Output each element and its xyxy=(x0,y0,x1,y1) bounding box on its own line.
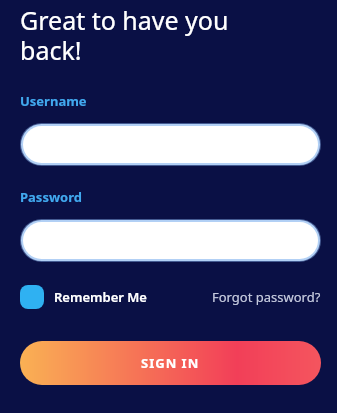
staticText: SIGN IN xyxy=(141,354,200,372)
button[interactable] xyxy=(23,222,318,259)
staticText: Password xyxy=(20,188,82,206)
button[interactable]: Forgot password? xyxy=(212,288,321,306)
button[interactable]: Remember Me xyxy=(20,285,147,309)
staticText: Remember Me xyxy=(54,288,147,306)
button[interactable]: SIGN IN xyxy=(20,341,321,385)
staticText: Username xyxy=(20,92,87,110)
button[interactable] xyxy=(23,126,318,163)
staticText: Great to have you back! xyxy=(20,3,229,67)
